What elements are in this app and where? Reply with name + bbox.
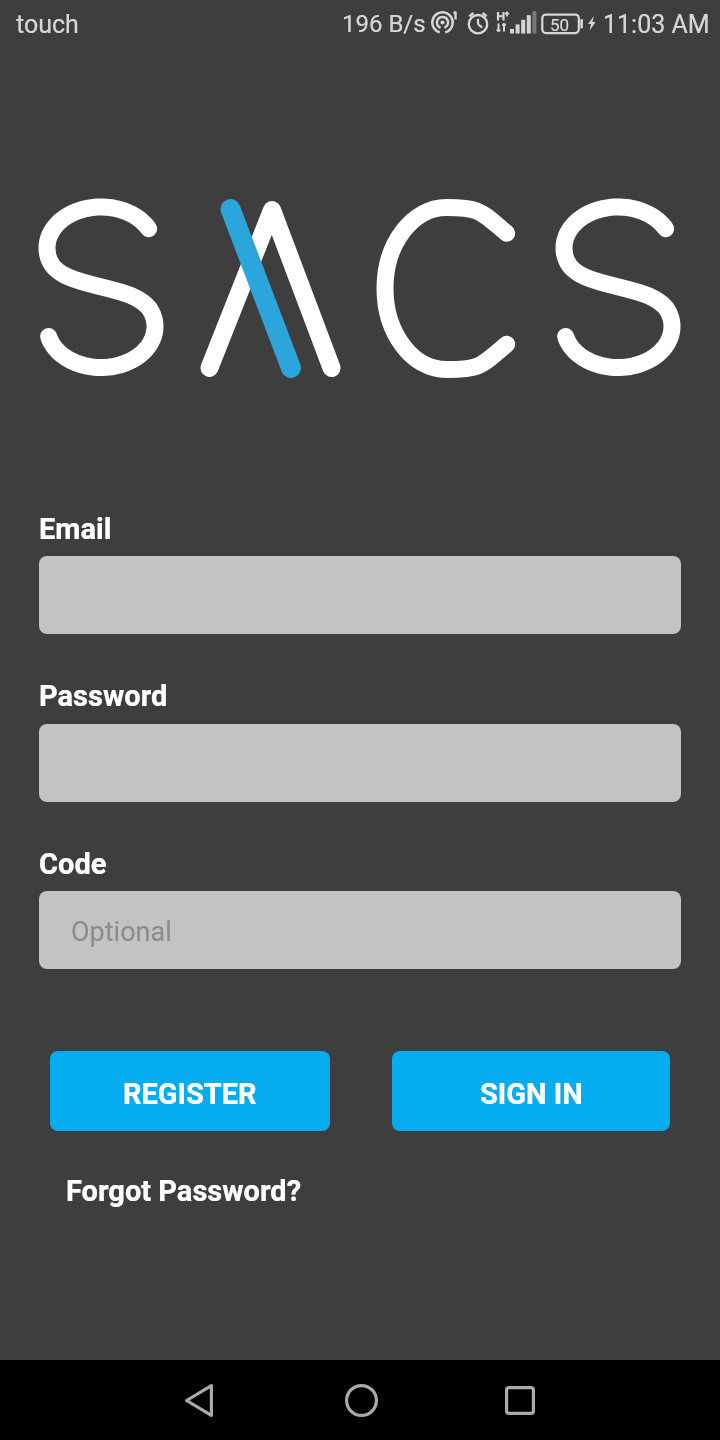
- staticText: Email: [39, 512, 112, 546]
- button[interactable]: Back: [154, 1360, 244, 1440]
- staticText: 11:03 AM: [603, 10, 710, 39]
- button[interactable]: Optional: [39, 891, 681, 969]
- button[interactable]: [39, 724, 681, 802]
- staticText: REGISTER: [123, 1077, 257, 1111]
- button[interactable]: Home: [316, 1360, 406, 1440]
- staticText: touch: [16, 10, 79, 39]
- staticText: Optional: [71, 916, 172, 948]
- button[interactable]: SIGN IN: [392, 1051, 670, 1131]
- button[interactable]: REGISTER: [50, 1051, 330, 1131]
- staticText: Code: [39, 847, 107, 881]
- button[interactable]: Forgot Password?: [66, 1174, 302, 1208]
- button[interactable]: [39, 556, 681, 634]
- staticText: Password: [39, 679, 168, 713]
- button[interactable]: Recents: [475, 1360, 565, 1440]
- staticText: 50: [550, 15, 570, 35]
- staticText: Forgot Password?: [66, 1174, 302, 1208]
- staticText: 196 B/s: [342, 10, 426, 38]
- staticText: SIGN IN: [480, 1077, 583, 1111]
